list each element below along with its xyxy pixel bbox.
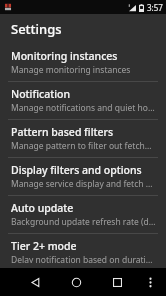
staticText: Pattern based filters [11, 125, 114, 139]
staticText: Manage service display and fetch filters [11, 178, 156, 190]
staticText: Manage pattern to filter out fetched ele… [11, 140, 156, 152]
staticText: Display filters and options [11, 163, 142, 177]
button[interactable]: Home [56, 268, 97, 296]
staticText: Background update refresh rate (disabled… [11, 216, 156, 228]
staticText: Manage notifications and quiet hours [11, 102, 156, 114]
staticText: Tier 2+ mode [11, 239, 77, 253]
staticText: 3:57 [147, 2, 163, 13]
staticText: Settings [11, 20, 62, 38]
button[interactable]: Monitoring instances [0, 44, 166, 81]
button[interactable]: Auto update [0, 196, 166, 233]
staticText: Delay notification based on duration [11, 254, 156, 263]
button[interactable]: Tier 2+ mode [0, 234, 166, 268]
button[interactable]: Display filters and options [0, 158, 166, 195]
staticText: Notification [11, 87, 71, 101]
button[interactable]: Pattern based filters [0, 120, 166, 157]
button[interactable]: Recent apps [97, 268, 138, 296]
staticText: Monitoring instances [11, 49, 118, 63]
button[interactable]: Notification [0, 82, 166, 119]
staticText: Auto update [11, 201, 74, 215]
button[interactable]: Back [14, 268, 56, 296]
button[interactable]: More options [138, 268, 162, 296]
staticText: Manage monitoring instances [11, 64, 131, 76]
